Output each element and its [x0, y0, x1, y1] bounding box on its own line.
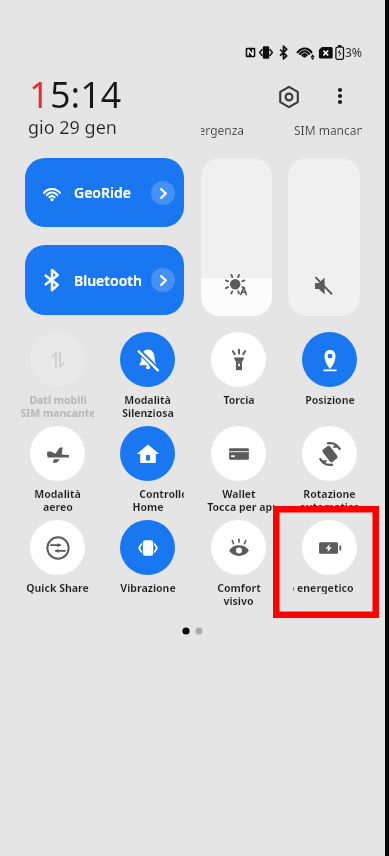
staticText: Posizione [305, 393, 355, 406]
staticText: GeoRide [74, 183, 131, 202]
staticText: Comfort [217, 581, 261, 594]
button[interactable]: GeoRide [25, 158, 184, 227]
button[interactable]: Settings [275, 83, 303, 111]
staticText: 1 [29, 70, 50, 119]
button[interactable]: Vibrazione [102, 518, 192, 608]
staticText: Risparmio energetico [293, 581, 354, 594]
button[interactable]: Dati mobili [12, 330, 102, 420]
staticText: automatica [299, 500, 360, 513]
staticText: Silenziosa [122, 406, 174, 419]
staticText: Dati mobili [29, 393, 87, 406]
staticText: Wallet [222, 487, 256, 500]
button[interactable]: Rotazione [284, 424, 374, 514]
button[interactable]: Torcia [193, 330, 283, 420]
button[interactable]: Brightness [201, 158, 272, 316]
button[interactable]: More options [327, 83, 353, 109]
staticText: Home [132, 500, 164, 513]
staticText: Quick Share [26, 581, 89, 594]
staticText: 5:14 [50, 70, 122, 119]
staticText: Rotazione [303, 487, 356, 500]
staticText: Controllo [139, 487, 184, 500]
button[interactable]: Quick Share [12, 518, 102, 608]
button[interactable]: Controllo [102, 424, 192, 514]
button[interactable]: Bluetooth [25, 245, 184, 315]
staticText: gio 29 gen [28, 115, 117, 140]
staticText: aereo [43, 500, 73, 513]
staticText: SIM mancante [294, 122, 362, 138]
button[interactable]: Risparmio energetico [284, 518, 374, 608]
button[interactable]: Posizione [284, 330, 374, 420]
staticText: Modalità [34, 487, 81, 500]
staticText: SIM mancante [21, 406, 94, 419]
staticText: Modalità [124, 393, 171, 406]
button[interactable]: Modalità [12, 424, 102, 514]
staticText: 3% [345, 44, 363, 60]
staticText: Vibrazione [120, 581, 176, 594]
staticText: Bluetooth [74, 271, 142, 290]
staticText: visivo [223, 594, 254, 607]
staticText: Tocca per aprire [207, 500, 275, 513]
button[interactable]: Wallet [193, 424, 283, 514]
button[interactable]: Volume [288, 158, 360, 316]
staticText: Chiamata di emergenza [201, 122, 245, 138]
staticText: Torcia [223, 393, 255, 406]
button[interactable]: Comfort [193, 518, 283, 608]
button[interactable]: Modalità [102, 330, 192, 420]
